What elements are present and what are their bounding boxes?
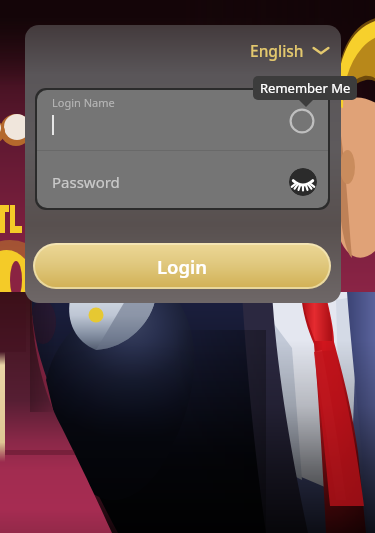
staticText: Login Name xyxy=(52,95,115,110)
button[interactable]: Login xyxy=(35,245,329,287)
button[interactable]: English xyxy=(250,37,331,63)
staticText: English xyxy=(250,40,304,61)
button[interactable]: Show password xyxy=(289,168,317,196)
staticText: Login xyxy=(157,254,208,279)
staticText: Remember Me xyxy=(260,79,351,97)
button[interactable]: Remember Me xyxy=(289,108,315,134)
staticText: Password xyxy=(52,172,120,192)
